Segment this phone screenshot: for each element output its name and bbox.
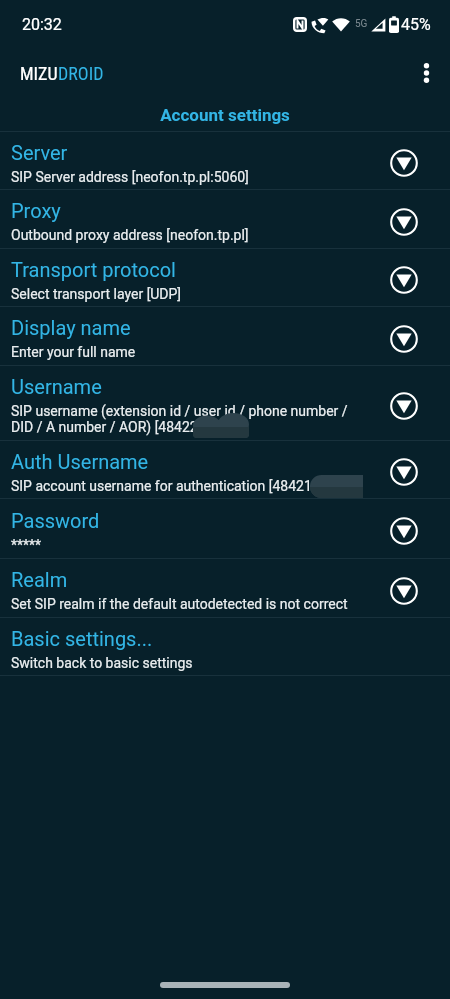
button[interactable]: Expand Server bbox=[390, 149, 418, 177]
staticText: Enter your full name bbox=[11, 344, 136, 360]
button[interactable]: Basic settings... bbox=[0, 618, 450, 675]
button[interactable]: Proxy bbox=[0, 190, 450, 248]
staticText: 20:32 bbox=[22, 15, 62, 34]
staticText: Proxy bbox=[11, 199, 61, 222]
staticText: MIZU bbox=[20, 63, 58, 84]
button[interactable]: Expand Auth Username bbox=[390, 458, 418, 486]
button[interactable]: Server bbox=[0, 132, 450, 189]
button[interactable]: Expand Display name bbox=[390, 325, 418, 353]
staticText: Basic settings... bbox=[11, 627, 153, 650]
staticText: Outbound proxy address [neofon.tp.pl] bbox=[11, 227, 249, 243]
staticText: Account settings bbox=[160, 105, 290, 125]
button[interactable]: Username bbox=[0, 366, 450, 440]
button[interactable]: Display name bbox=[0, 307, 450, 365]
staticText: Username bbox=[11, 375, 102, 398]
staticText: SIP Server address [neofon.tp.pl:5060] bbox=[11, 169, 249, 185]
button[interactable]: Expand Username bbox=[390, 392, 418, 420]
staticText: 5G bbox=[355, 18, 368, 30]
staticText: Select transport layer [UDP] bbox=[11, 286, 182, 302]
button[interactable]: Expand Password bbox=[390, 517, 418, 545]
staticText: Auth Username bbox=[11, 450, 149, 473]
button[interactable]: Expand Realm bbox=[390, 577, 418, 605]
button[interactable]: Realm bbox=[0, 559, 450, 617]
button[interactable]: Expand Proxy bbox=[390, 208, 418, 236]
button[interactable]: More options bbox=[406, 51, 450, 95]
staticText: Server bbox=[11, 141, 68, 164]
staticText: Transport protocol bbox=[11, 258, 176, 281]
button[interactable]: Transport protocol bbox=[0, 249, 450, 306]
staticText: Switch back to basic settings bbox=[11, 655, 193, 671]
staticText: Realm bbox=[11, 568, 68, 591]
button[interactable]: Auth Username bbox=[0, 441, 450, 498]
staticText: Display name bbox=[11, 316, 131, 339]
staticText: Set SIP realm if the default autodetecte… bbox=[11, 596, 348, 612]
button[interactable]: Expand Transport protocol bbox=[390, 266, 418, 294]
staticText: SIP username (extension id / user id / p… bbox=[11, 403, 348, 419]
staticText: ***** bbox=[11, 537, 42, 553]
button[interactable]: Password bbox=[0, 499, 450, 558]
staticText: DROID bbox=[58, 63, 104, 84]
staticText: DID / A number / AOR) [48422 bbox=[11, 419, 198, 435]
staticText: SIP account username for authentication … bbox=[11, 478, 312, 494]
staticText: 45% bbox=[401, 15, 431, 34]
staticText: Password bbox=[11, 509, 100, 532]
